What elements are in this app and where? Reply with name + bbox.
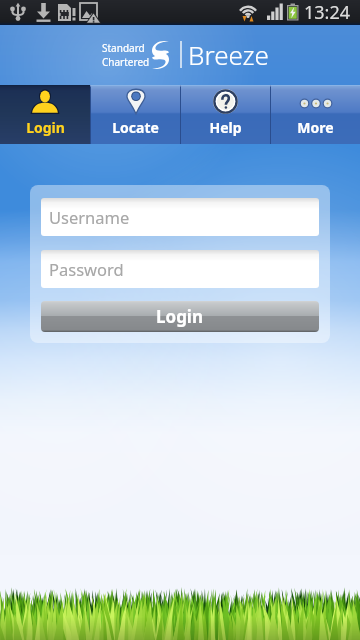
staticText: Password bbox=[49, 258, 124, 280]
button[interactable]: Help bbox=[181, 85, 270, 144]
button[interactable]: More bbox=[271, 85, 360, 144]
button[interactable]: Locate bbox=[91, 85, 180, 144]
staticText: 13:24 bbox=[304, 0, 351, 25]
staticText: Username bbox=[49, 206, 130, 228]
button[interactable]: Login bbox=[41, 301, 319, 332]
staticText: Login bbox=[156, 305, 204, 328]
button[interactable]: Password bbox=[41, 250, 319, 288]
staticText: More bbox=[297, 118, 334, 137]
staticText: Breeze bbox=[188, 37, 269, 72]
staticText: Chartered bbox=[102, 55, 150, 69]
staticText: Login bbox=[26, 118, 65, 137]
button[interactable]: Login bbox=[0, 85, 90, 144]
button[interactable]: Username bbox=[41, 198, 319, 236]
staticText: Standard bbox=[102, 41, 145, 55]
staticText: Help bbox=[209, 118, 242, 137]
staticText: Locate bbox=[112, 118, 159, 137]
